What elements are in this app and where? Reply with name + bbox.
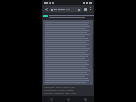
button[interactable]: [43, 15, 48, 17]
button[interactable]: Home: [60, 96, 77, 102]
button[interactable]: More options: [88, 7, 92, 11]
button[interactable]: Tabs: [83, 7, 87, 11]
button[interactable]: [49, 7, 82, 12]
button[interactable]: Recents: [77, 96, 94, 102]
button[interactable]: Back: [42, 96, 60, 102]
button[interactable]: Back: [44, 7, 49, 12]
